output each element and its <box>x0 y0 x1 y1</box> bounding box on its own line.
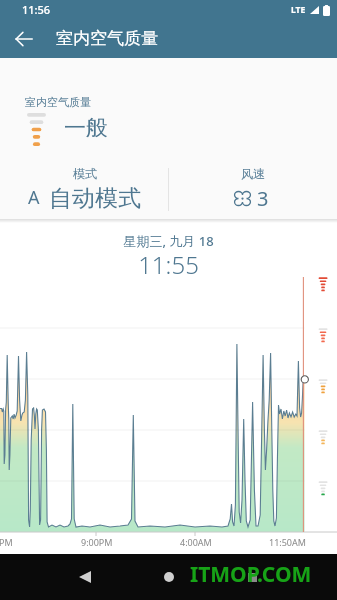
staticText: 星期三, 九月 18 <box>0 232 337 250</box>
button[interactable] <box>0 161 168 219</box>
staticText: 风速 <box>241 166 265 181</box>
staticText: PM <box>0 536 13 548</box>
staticText: 9:00PM <box>81 536 113 548</box>
button[interactable]: Recents <box>230 555 274 599</box>
staticText: 室内空气质量 <box>56 28 158 49</box>
staticText: 11:56 <box>22 2 51 17</box>
staticText: A <box>28 185 40 210</box>
staticText: 一般 <box>64 114 108 142</box>
staticText: 室内空气质量 <box>25 95 91 109</box>
button[interactable] <box>169 161 337 219</box>
staticText: 4:00AM <box>180 536 212 548</box>
staticText: 11:50AM <box>269 536 306 548</box>
button[interactable]: Back <box>63 555 107 599</box>
staticText: 11:55 <box>0 248 337 281</box>
staticText: 3 <box>257 185 269 212</box>
staticText: 模式 <box>73 166 97 181</box>
button[interactable]: Home <box>147 555 191 599</box>
staticText: 自动模式 <box>49 184 141 213</box>
button[interactable]: Back <box>6 21 42 57</box>
staticText: LTE <box>291 4 306 16</box>
staticText: ITMOP.COM <box>190 560 312 589</box>
